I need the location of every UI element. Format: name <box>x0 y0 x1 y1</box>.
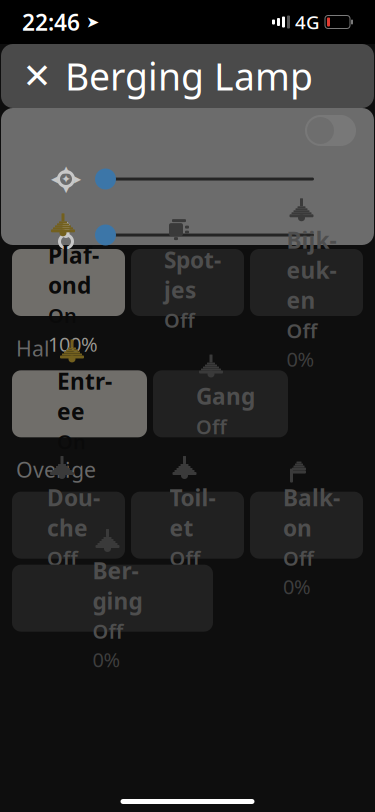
staticText: Gang <box>196 381 255 411</box>
staticText: 0% <box>283 573 311 600</box>
button[interactable]: ◣◢ <box>12 249 125 316</box>
staticText: On <box>57 428 86 455</box>
staticText: ▼ <box>62 183 69 194</box>
staticText: ◀ <box>51 174 58 184</box>
button[interactable]: ◣◢ <box>12 370 147 437</box>
button[interactable]: ◣◢ <box>153 370 288 437</box>
staticText: Bijkeuken <box>286 225 336 315</box>
staticText: Off <box>47 545 78 571</box>
staticText: Berging <box>92 555 142 616</box>
staticText: Spotjes <box>164 245 221 305</box>
staticText: Off <box>164 307 195 333</box>
staticText: ✦ <box>61 172 71 186</box>
staticText: Balkon <box>283 482 340 543</box>
staticText: Berging Lamp <box>65 51 313 101</box>
button[interactable]: ◣◢ <box>250 249 363 316</box>
staticText: ▲ <box>62 164 69 175</box>
staticText: Toilet <box>169 482 215 543</box>
button[interactable]: Power toggle <box>305 115 356 146</box>
button[interactable]: Balkon <box>250 492 363 559</box>
staticText: Douche <box>47 482 100 543</box>
staticText: ▶ <box>74 174 81 184</box>
staticText: Hal <box>16 334 50 362</box>
staticText: 0% <box>92 646 120 673</box>
button[interactable]: ◣◢ <box>131 492 244 559</box>
button[interactable]: Close <box>15 54 59 98</box>
staticText: On <box>48 302 77 329</box>
staticText: Entree <box>57 366 112 426</box>
staticText: Off <box>92 618 123 644</box>
button[interactable]: ◣◢ <box>12 492 125 559</box>
button[interactable]: ◣◢ <box>12 565 213 632</box>
staticText: Plafond <box>48 240 99 300</box>
staticText: Off <box>196 413 227 440</box>
staticText: ✕ <box>22 56 51 96</box>
staticText: 4G <box>295 10 320 34</box>
staticText: 0% <box>286 346 314 372</box>
staticText: Off <box>283 545 314 571</box>
staticText: Off <box>169 545 200 571</box>
button[interactable]: Spotjes <box>131 249 244 316</box>
staticText: Overige <box>16 455 96 484</box>
staticText: 100% <box>48 331 98 357</box>
staticText: ➤ <box>80 13 99 31</box>
staticText: Off <box>286 317 317 344</box>
staticText: 22:46 <box>22 7 80 37</box>
